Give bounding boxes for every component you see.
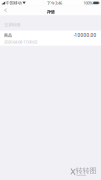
staticText: -10000.00 [74,32,97,38]
staticText: 转转图 [76,166,97,175]
staticText: zhuanzhuan [76,173,86,177]
staticText: 中国移动 [6,0,22,5]
staticText: 详情 [46,9,54,15]
staticText: 交易明细 [4,22,20,28]
staticText: 下午3:46 [47,0,62,6]
staticText: 2020-04-08 17:00:02 [4,39,37,45]
staticText: 100% [83,0,92,6]
button[interactable]: 商品 [0,31,101,46]
staticText: 商品 [4,33,12,38]
button[interactable]: Back [0,6,10,15]
